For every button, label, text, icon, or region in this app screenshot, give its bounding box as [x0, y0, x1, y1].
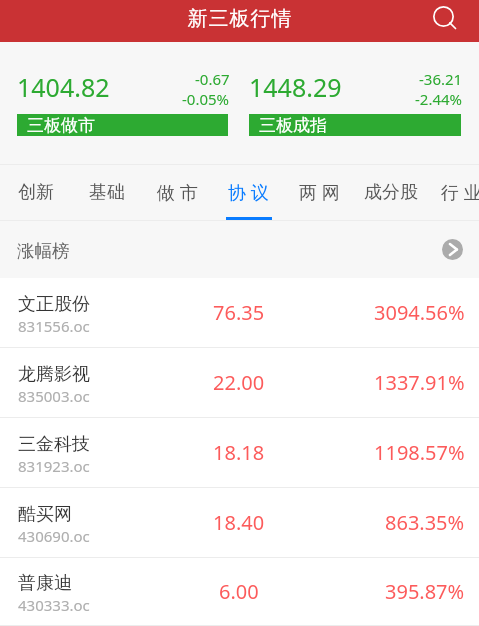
button[interactable]: 创新	[0, 165, 71, 221]
staticText: 76.35	[213, 299, 265, 326]
staticText: 普康迪	[18, 572, 72, 595]
button[interactable]: 两 网	[284, 165, 355, 221]
button[interactable]: 协 议	[213, 165, 284, 221]
staticText: 835003.oc	[18, 386, 90, 406]
staticText: 文正股份	[18, 293, 90, 316]
staticText: 涨幅榜	[17, 240, 70, 262]
staticText: 1404.82	[17, 70, 110, 104]
staticText: 三板成指	[259, 115, 327, 136]
staticText: 18.18	[213, 439, 265, 466]
staticText: -0.67	[195, 69, 230, 89]
button[interactable]: 行 业	[426, 165, 479, 221]
staticText: 395.87%	[385, 578, 465, 605]
staticText: 三板做市	[27, 115, 95, 136]
button[interactable]: 酷买网	[0, 488, 479, 558]
staticText: 22.00	[213, 369, 265, 396]
staticText: -0.05%	[182, 89, 230, 109]
button[interactable]: 成分股	[355, 165, 426, 221]
button[interactable]: 三板做市	[17, 114, 228, 136]
staticText: 831556.oc	[18, 316, 90, 336]
button[interactable]: 文正股份	[0, 278, 479, 348]
staticText: 1448.29	[249, 70, 342, 104]
staticText: 1198.57%	[374, 439, 465, 466]
staticText: 新三板行情	[187, 6, 292, 31]
button[interactable]: 做 市	[142, 165, 213, 221]
staticText: 三金科技	[18, 433, 90, 456]
staticText: 430690.oc	[18, 526, 90, 546]
staticText: 行 业	[441, 180, 479, 205]
staticText: 831923.oc	[18, 456, 90, 476]
staticText: 酷买网	[18, 503, 72, 526]
button[interactable]: 龙腾影视	[0, 348, 479, 418]
staticText: 创新	[18, 181, 54, 204]
staticText: 863.35%	[385, 509, 465, 536]
button[interactable]: Search	[426, 1, 466, 41]
staticText: 基础	[89, 181, 125, 204]
button[interactable]: 三金科技	[0, 418, 479, 488]
staticText: 成分股	[364, 181, 418, 204]
staticText: -36.21	[419, 69, 463, 89]
staticText: 3094.56%	[374, 299, 465, 326]
staticText: 18.40	[213, 509, 265, 536]
button[interactable]: 基础	[71, 165, 142, 221]
staticText: -2.44%	[415, 89, 463, 109]
staticText: 430333.oc	[18, 595, 90, 615]
button[interactable]: 三板成指	[249, 114, 461, 136]
staticText: 6.00	[219, 578, 259, 605]
staticText: 两 网	[299, 180, 340, 205]
staticText: 龙腾影视	[18, 363, 90, 386]
staticText: 1337.91%	[374, 369, 465, 396]
staticText: 协 议	[228, 180, 269, 205]
staticText: 做 市	[157, 180, 198, 205]
button[interactable]: 普康迪	[0, 558, 479, 626]
button[interactable]: 涨幅榜	[0, 221, 479, 278]
